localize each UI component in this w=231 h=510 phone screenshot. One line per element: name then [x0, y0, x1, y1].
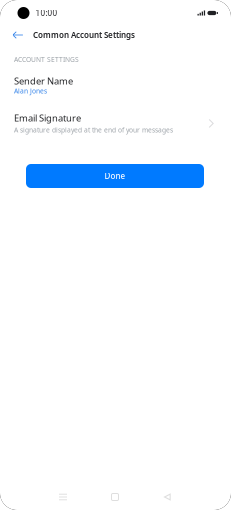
- staticText: ACCOUNT SETTINGS: [14, 55, 79, 64]
- button[interactable]: Back: [141, 485, 193, 509]
- staticText: A signature displayed at the end of your…: [14, 126, 173, 134]
- button[interactable]: Home: [89, 485, 141, 509]
- staticText: Email Signature: [14, 112, 81, 124]
- staticText: Alan Jones: [14, 87, 47, 95]
- button[interactable]: Back: [0, 23, 33, 47]
- staticText: 10:00: [35, 8, 57, 18]
- staticText: Sender Name: [14, 75, 73, 87]
- button[interactable]: Email Signature: [0, 113, 231, 141]
- button[interactable]: Sender Name: [0, 76, 231, 104]
- staticText: Done: [104, 171, 125, 181]
- button[interactable]: Done: [26, 164, 204, 188]
- button[interactable]: Recent apps: [37, 485, 89, 509]
- staticText: Common Account Settings: [33, 30, 135, 40]
